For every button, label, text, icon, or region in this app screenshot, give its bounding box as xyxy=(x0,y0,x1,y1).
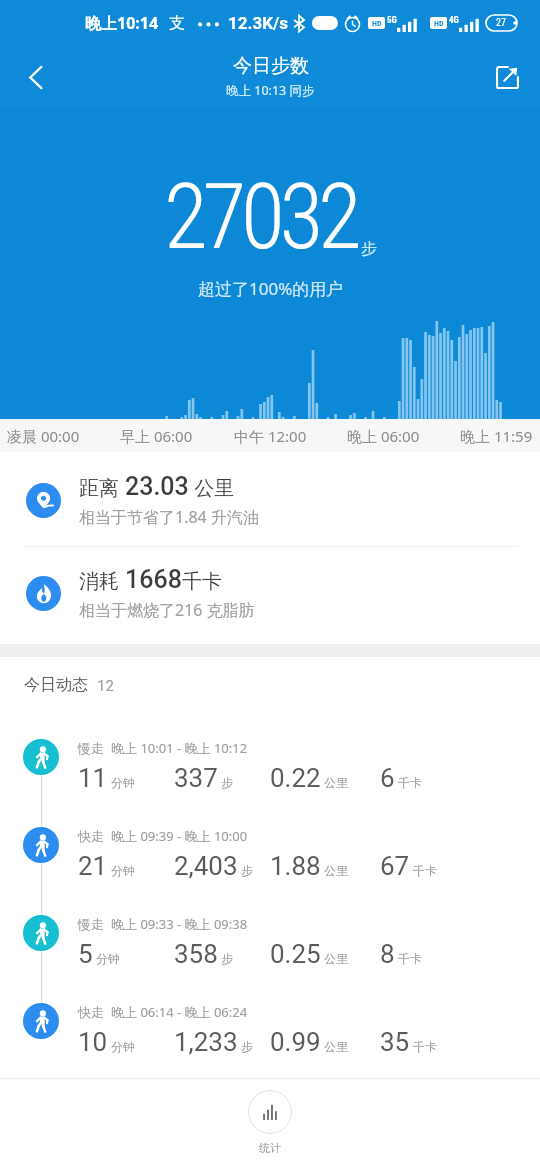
staticText: 步 xyxy=(221,951,233,966)
staticText: 步 xyxy=(241,863,253,878)
staticText: 快走 xyxy=(78,828,104,844)
staticText: 27032 xyxy=(164,165,357,270)
staticText: 1668 xyxy=(125,565,182,594)
staticText: 12.3K/s xyxy=(228,13,289,33)
staticText: 千卡 xyxy=(413,1039,437,1054)
staticText: 今日动态 xyxy=(24,675,88,695)
staticText: HD xyxy=(372,19,382,28)
staticText: 步 xyxy=(241,1039,253,1054)
staticText: 千卡 xyxy=(398,775,422,790)
staticText: 慢走 xyxy=(78,916,104,932)
staticText: 晚上 06:14 - 晚上 06:24 xyxy=(111,1003,248,1021)
staticText: 晚上 11:59 xyxy=(460,426,533,446)
staticText: HD xyxy=(434,19,444,28)
staticText: 相当于节省了1.84 升汽油 xyxy=(79,506,259,528)
staticText: 337 xyxy=(174,763,218,793)
staticText: 1.88 xyxy=(270,851,321,881)
staticText: 分钟 xyxy=(111,863,135,878)
staticText: 27 xyxy=(496,17,506,29)
staticText: 分钟 xyxy=(111,775,135,790)
staticText: 12 xyxy=(97,677,114,695)
button[interactable]: 快走 xyxy=(0,827,540,915)
button[interactable]: 快走 xyxy=(0,1003,540,1091)
staticText: 5G xyxy=(387,15,397,26)
staticText: 晚上 09:39 - 晚上 10:00 xyxy=(111,827,248,845)
staticText: 4G xyxy=(449,15,459,26)
staticText: 0.22 xyxy=(270,763,321,793)
staticText: 晚上 10:01 - 晚上 10:12 xyxy=(111,739,248,757)
staticText: 相当于燃烧了216 克脂肪 xyxy=(79,599,255,621)
staticText: 晚上 10:13 同步 xyxy=(226,82,315,99)
button[interactable]: Share xyxy=(476,46,538,108)
staticText: 消耗 xyxy=(79,567,125,594)
staticText: 支 xyxy=(169,13,185,33)
staticText: 慢走 xyxy=(78,740,104,756)
staticText: 358 xyxy=(174,939,218,969)
button[interactable]: 统计 xyxy=(248,1090,292,1155)
staticText: 早上 06:00 xyxy=(120,426,193,446)
staticText: 公里 xyxy=(324,863,348,878)
staticText: 千卡 xyxy=(398,951,422,966)
staticText: 10 xyxy=(78,1027,108,1057)
staticText: 千卡 xyxy=(413,863,437,878)
staticText: 分钟 xyxy=(111,1039,135,1054)
button[interactable]: 消耗 xyxy=(0,547,540,639)
staticText: 超过了100%的用户 xyxy=(198,277,344,300)
staticText: 0.99 xyxy=(270,1027,321,1057)
staticText: 距离 xyxy=(79,474,125,501)
staticText: 0.25 xyxy=(270,939,321,969)
staticText: 23.03 xyxy=(125,472,189,501)
staticText: 5 xyxy=(78,939,93,969)
staticText: 步 xyxy=(221,775,233,790)
staticText: 千卡 xyxy=(182,569,222,594)
staticText: 6 xyxy=(380,763,395,793)
button[interactable]: 距离 xyxy=(0,454,540,546)
staticText: 公里 xyxy=(189,474,235,501)
staticText: 分钟 xyxy=(96,951,120,966)
staticText: 晚上 06:00 xyxy=(347,426,420,446)
staticText: 步 xyxy=(361,239,377,259)
staticText: 中午 12:00 xyxy=(234,426,307,446)
staticText: 公里 xyxy=(324,1039,348,1054)
staticText: 公里 xyxy=(324,951,348,966)
staticText: 晚上10:14 xyxy=(85,12,159,34)
staticText: 晚上 09:33 - 晚上 09:38 xyxy=(111,915,248,933)
staticText: 67 xyxy=(380,851,410,881)
staticText: 凌晨 00:00 xyxy=(7,426,80,446)
staticText: 公里 xyxy=(324,775,348,790)
staticText: 11 xyxy=(78,763,108,793)
staticText: 35 xyxy=(380,1027,410,1057)
button[interactable]: 慢走 xyxy=(0,739,540,827)
staticText: 快走 xyxy=(78,1004,104,1020)
staticText: 今日步数 xyxy=(233,54,309,78)
staticText: 2,403 xyxy=(174,851,238,881)
staticText: 21 xyxy=(78,851,108,881)
button[interactable]: 慢走 xyxy=(0,915,540,1003)
button[interactable]: Back xyxy=(0,46,70,108)
staticText: 统计 xyxy=(259,1141,281,1155)
staticText: 1,233 xyxy=(174,1027,238,1057)
staticText: 8 xyxy=(380,939,395,969)
